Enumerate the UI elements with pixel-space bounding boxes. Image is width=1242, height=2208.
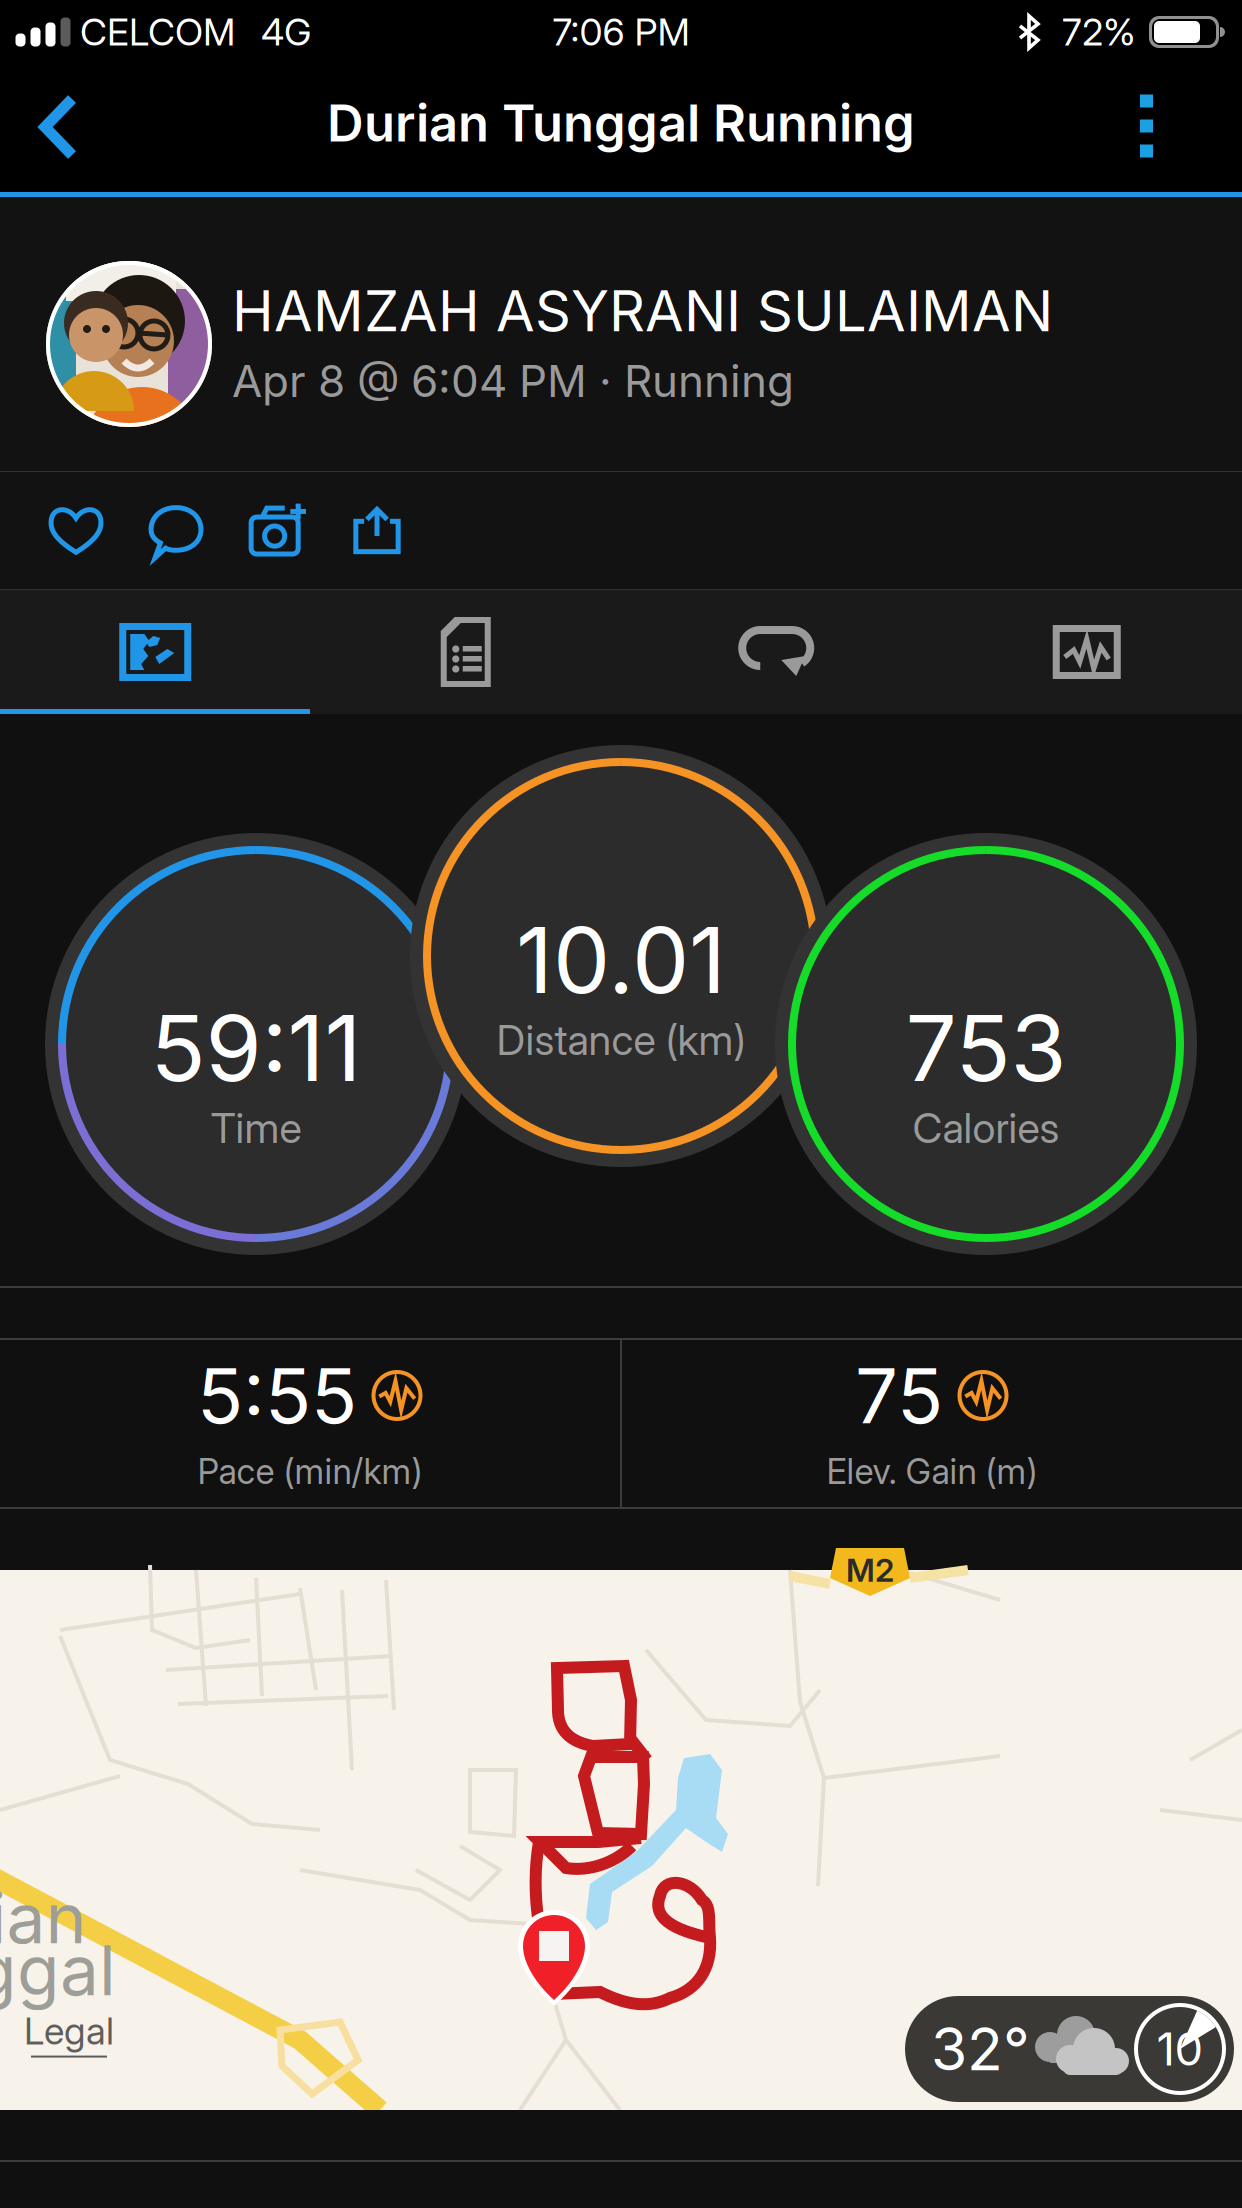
staticText: 75 xyxy=(855,1349,943,1441)
staticText: HAMZAH ASYRANI SULAIMAN xyxy=(232,277,1053,345)
staticText: 7:06 PM xyxy=(552,9,689,55)
staticText: ian xyxy=(0,1876,86,1960)
staticText: 4G xyxy=(261,9,311,55)
staticText: Durian Tunggal Running xyxy=(327,92,915,154)
button[interactable]: More options xyxy=(1094,71,1242,190)
staticText: 32° xyxy=(931,2013,1030,2084)
staticText: 10.01 xyxy=(516,905,726,1015)
button[interactable]: Back xyxy=(0,73,114,189)
staticText: Calories xyxy=(912,1103,1059,1153)
staticText: Distance (km) xyxy=(496,1015,745,1065)
button[interactable]: Like xyxy=(26,476,126,584)
button[interactable]: Details xyxy=(310,590,621,714)
staticText: 753 xyxy=(905,993,1066,1103)
staticText: M2 xyxy=(846,1551,894,1589)
staticText: Time xyxy=(210,1103,301,1153)
staticText: Pace (min/km) xyxy=(197,1450,422,1492)
staticText: Elev. Gain (m) xyxy=(826,1450,1037,1492)
button[interactable]: Add photo xyxy=(226,474,330,586)
button[interactable]: Comment xyxy=(126,476,226,584)
button[interactable]: Map xyxy=(0,590,310,714)
staticText: Apr 8 @ 6:04 PM · Running xyxy=(232,354,794,408)
button[interactable]: Weather: 32 degrees, wind 10 xyxy=(905,1996,1234,2102)
staticText: CELCOM xyxy=(80,9,235,55)
staticText: Legal xyxy=(24,2008,114,2054)
button[interactable]: Charts xyxy=(931,590,1242,714)
staticText: 5:55 xyxy=(197,1349,357,1441)
button[interactable]: Laps xyxy=(621,590,931,714)
button[interactable]: Share xyxy=(330,479,424,581)
staticText: 72% xyxy=(1062,9,1136,55)
staticText: 59:11 xyxy=(150,993,361,1103)
staticText: ggal xyxy=(0,1928,116,2012)
staticText: 10 xyxy=(1156,2022,1203,2076)
